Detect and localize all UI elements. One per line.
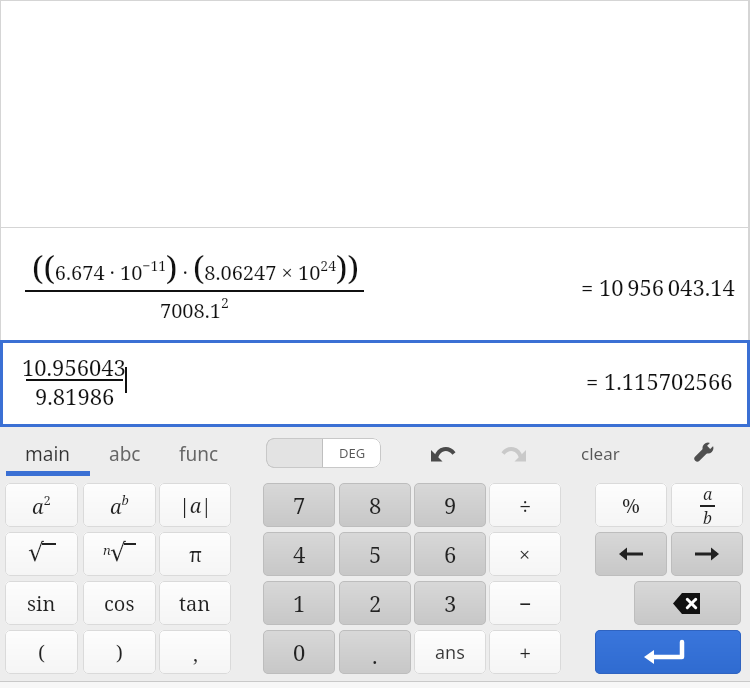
staticText: = 1.115702566 — [586, 366, 733, 396]
staticText: 5 — [369, 539, 382, 569]
staticText: clear — [581, 442, 620, 465]
staticText: ans — [435, 640, 465, 665]
staticText: n — [103, 541, 111, 559]
staticText: b — [703, 507, 712, 527]
button[interactable]: ((6.674 · 10−11) · (8.06247 × 1024)) — [0, 227, 750, 340]
staticText: ((6.674 · 10−11) · (8.06247 × 1024)) — [32, 245, 359, 290]
staticText: abc — [109, 441, 141, 467]
staticText: 9 — [444, 490, 457, 520]
staticText: − — [519, 588, 532, 618]
button[interactable]: main — [6, 432, 90, 476]
button[interactable] — [634, 581, 741, 625]
button[interactable]: − — [489, 581, 561, 625]
staticText: + — [519, 637, 532, 667]
staticText: 1 — [293, 588, 306, 618]
button[interactable]: 2 — [339, 581, 411, 625]
staticText: = 10 956 043.14 — [581, 272, 735, 302]
button[interactable]: tan — [159, 581, 231, 625]
staticText: sin — [27, 590, 56, 617]
button[interactable]: 1 — [263, 581, 335, 625]
button[interactable]: n — [83, 532, 156, 576]
button[interactable]: ab — [83, 483, 156, 527]
staticText: cos — [104, 590, 135, 617]
button[interactable]: 7 — [263, 483, 335, 527]
button[interactable]: func — [165, 432, 233, 476]
button[interactable] — [595, 532, 667, 576]
staticText: 7 — [293, 490, 306, 520]
staticText: ) — [116, 639, 123, 666]
button[interactable]: a2 — [5, 483, 78, 527]
button[interactable]: 3 — [414, 581, 486, 625]
staticText: 9.81986 — [35, 381, 115, 405]
staticText: 8 — [369, 490, 382, 520]
button[interactable]: ÷ — [489, 483, 561, 527]
staticText: 3 — [444, 588, 457, 618]
staticText: 7008.12 — [160, 293, 229, 321]
button[interactable] — [595, 630, 741, 674]
button[interactable]: , — [159, 630, 231, 674]
button[interactable]: 0 — [263, 630, 335, 674]
button[interactable] — [671, 532, 743, 576]
button[interactable]: a — [671, 483, 743, 527]
staticText: 2 — [369, 588, 382, 618]
button[interactable]: ) — [83, 630, 156, 674]
button[interactable]: sin — [5, 581, 78, 625]
button[interactable]: 8 — [339, 483, 411, 527]
staticText: π — [189, 541, 202, 568]
staticText: ab — [110, 491, 129, 520]
staticText: a2 — [32, 491, 51, 520]
button[interactable]: clear — [570, 438, 630, 468]
button[interactable]: × — [489, 532, 561, 576]
staticText: 0 — [293, 637, 306, 667]
button[interactable]: . — [339, 630, 411, 674]
button[interactable]: |a| — [159, 483, 231, 527]
staticText: √ — [28, 538, 44, 567]
button[interactable]: 4 — [263, 532, 335, 576]
button[interactable]: π — [159, 532, 231, 576]
button[interactable]: + — [489, 630, 561, 674]
staticText: |a| — [179, 492, 212, 519]
button[interactable] — [688, 438, 718, 468]
button[interactable]: DEG — [266, 438, 381, 468]
staticText: 10.956043 — [22, 352, 126, 379]
button[interactable]: 5 — [339, 532, 411, 576]
staticText: a — [703, 483, 713, 505]
staticText: main — [25, 441, 71, 467]
staticText: func — [179, 441, 219, 467]
button[interactable]: % — [595, 483, 667, 527]
button[interactable]: 9 — [414, 483, 486, 527]
staticText: DEG — [339, 444, 366, 462]
button[interactable]: √ — [5, 532, 78, 576]
staticText: % — [622, 492, 640, 519]
staticText: 4 — [293, 539, 306, 569]
staticText: ( — [38, 639, 45, 666]
staticText: ÷ — [519, 490, 532, 520]
button[interactable]: ( — [5, 630, 78, 674]
staticText: , — [193, 641, 198, 668]
button[interactable]: abc — [95, 432, 155, 476]
button[interactable] — [488, 438, 538, 468]
staticText: 6 — [444, 539, 457, 569]
button[interactable]: 6 — [414, 532, 486, 576]
staticText: √ — [110, 538, 126, 567]
button[interactable] — [418, 438, 468, 468]
staticText: tan — [179, 590, 211, 617]
staticText: × — [519, 541, 531, 568]
staticText: . — [372, 640, 378, 670]
button[interactable]: 10.956043 — [0, 340, 750, 427]
button[interactable]: ans — [414, 630, 486, 674]
button[interactable]: cos — [83, 581, 156, 625]
